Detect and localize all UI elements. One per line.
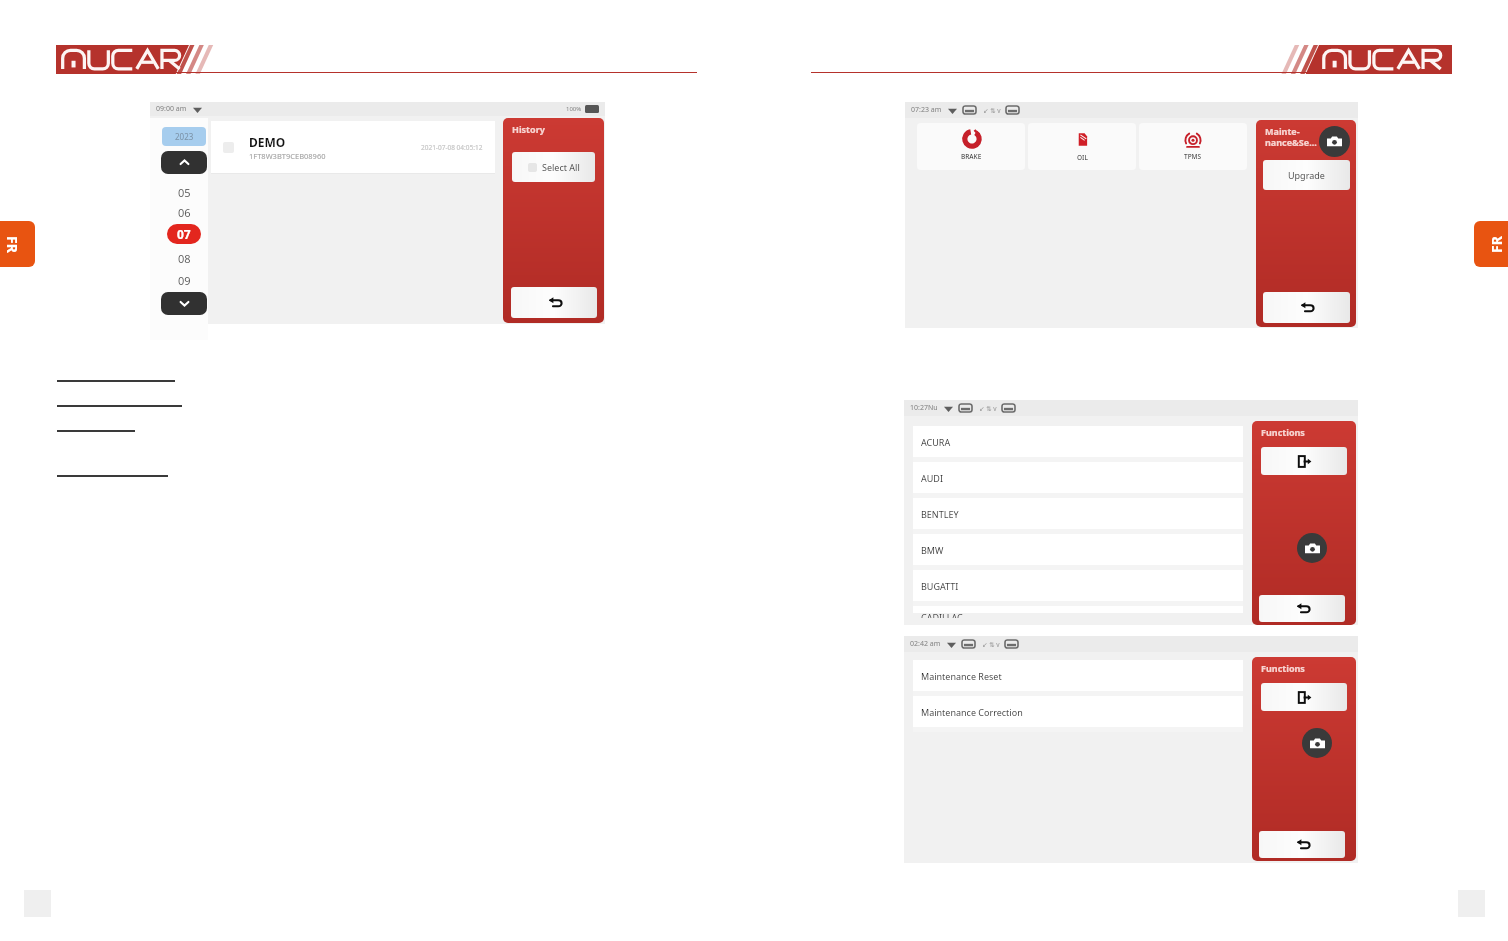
button[interactable]: Exit bbox=[1261, 683, 1347, 711]
button[interactable]: DEMO bbox=[211, 121, 495, 173]
staticText: Functions bbox=[1261, 426, 1305, 438]
button[interactable]: Screenshot bbox=[1302, 728, 1332, 758]
button[interactable]: BRAKE bbox=[917, 123, 1025, 170]
button[interactable]: Screenshot bbox=[1319, 126, 1350, 157]
staticText: Select All bbox=[542, 161, 580, 173]
button[interactable]: Select All bbox=[512, 152, 595, 182]
staticText: 100% bbox=[566, 105, 582, 113]
staticText: Maintenance Reset bbox=[921, 670, 1002, 682]
staticText: Maintenance Correction bbox=[921, 706, 1023, 718]
staticText: 1FT8W3BT9CEB08960 bbox=[249, 151, 326, 161]
button[interactable]: AUDI bbox=[913, 462, 1243, 493]
staticText: 05 bbox=[178, 185, 191, 200]
button[interactable]: FR language tab bbox=[1474, 221, 1508, 267]
button[interactable]: OIL bbox=[1028, 123, 1136, 170]
button[interactable]: 09 bbox=[167, 272, 201, 288]
staticText: OIL bbox=[1077, 153, 1088, 162]
button[interactable]: Exit bbox=[1261, 447, 1347, 475]
staticText: 06 bbox=[178, 205, 191, 220]
button[interactable]: Maintenance Correction bbox=[913, 696, 1243, 727]
staticText: Upgrade bbox=[1288, 169, 1325, 181]
button[interactable]: 07 bbox=[167, 224, 201, 244]
button[interactable]: 2023 bbox=[162, 127, 206, 146]
staticText: 08 bbox=[178, 251, 191, 266]
staticText: 09:00 am bbox=[156, 104, 187, 114]
staticText: ↙ ⇅ v bbox=[982, 640, 1000, 649]
staticText: Functions bbox=[1261, 662, 1305, 674]
staticText: BENTLEY bbox=[921, 508, 959, 520]
staticText: 02:42 am bbox=[910, 639, 941, 649]
button[interactable]: TPMS bbox=[1139, 123, 1247, 170]
button[interactable]: BMW bbox=[913, 534, 1243, 565]
staticText: 2023 bbox=[175, 131, 194, 142]
staticText: ACURA bbox=[921, 436, 951, 448]
staticText: 07 bbox=[177, 226, 191, 242]
staticText: AUDI bbox=[921, 472, 943, 484]
staticText: History bbox=[512, 123, 545, 135]
staticText: CADILLAC bbox=[921, 611, 963, 618]
button[interactable]: Upgrade bbox=[1263, 160, 1350, 190]
button[interactable]: 06 bbox=[167, 204, 201, 220]
staticText: 2021-07-08 04:05:12 bbox=[421, 143, 483, 152]
button[interactable]: FR language tab bbox=[0, 221, 35, 267]
button[interactable]: Back bbox=[1259, 595, 1345, 622]
button[interactable]: Screenshot bbox=[1297, 533, 1327, 563]
button[interactable]: 08 bbox=[167, 250, 201, 266]
staticText: FR bbox=[1487, 236, 1506, 253]
button[interactable]: Maintenance Reset bbox=[913, 660, 1243, 691]
button[interactable]: Previous years bbox=[161, 151, 207, 174]
staticText: BRAKE bbox=[961, 152, 982, 161]
staticText: ↙ ⇅ v bbox=[979, 404, 997, 413]
staticText: FR bbox=[3, 236, 22, 253]
staticText: ↙ ⇅ v bbox=[983, 106, 1001, 115]
button[interactable]: BENTLEY bbox=[913, 498, 1243, 529]
staticText: BMW bbox=[921, 544, 944, 556]
button[interactable]: Back bbox=[1259, 831, 1345, 858]
staticText: 10:27Nu bbox=[910, 403, 938, 413]
button[interactable]: Back bbox=[511, 287, 597, 318]
button[interactable]: 05 bbox=[167, 184, 201, 200]
button[interactable]: Back bbox=[1263, 292, 1350, 323]
button[interactable]: BUGATTI bbox=[913, 570, 1243, 601]
staticText: 09 bbox=[178, 273, 191, 288]
staticText: Mainte- nance&Se... bbox=[1265, 125, 1317, 148]
button[interactable]: ACURA bbox=[913, 426, 1243, 457]
staticText: DEMO bbox=[249, 134, 286, 150]
staticText: TPMS bbox=[1184, 152, 1202, 161]
staticText: 07:23 am bbox=[911, 105, 942, 115]
button[interactable]: Next years bbox=[161, 292, 207, 315]
staticText: BUGATTI bbox=[921, 580, 959, 592]
